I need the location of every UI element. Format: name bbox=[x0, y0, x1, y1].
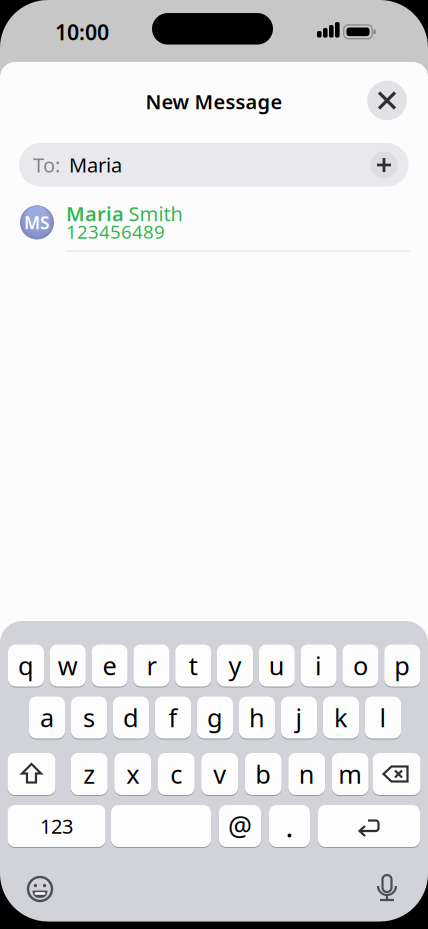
button[interactable]: a bbox=[29, 696, 65, 738]
button[interactable]: Emoji bbox=[23, 872, 57, 906]
staticText: . bbox=[285, 806, 293, 845]
button[interactable]: t bbox=[175, 644, 211, 686]
staticText: Smith bbox=[128, 200, 182, 227]
button[interactable]: To: Maria bbox=[19, 143, 409, 187]
button[interactable]: 123 bbox=[7, 805, 105, 847]
staticText: @ bbox=[228, 808, 252, 844]
staticText: v bbox=[213, 757, 226, 791]
staticText: a bbox=[40, 701, 54, 734]
button[interactable]: Close bbox=[367, 81, 407, 120]
staticText: s bbox=[83, 701, 95, 734]
staticText: To: bbox=[33, 151, 60, 178]
staticText: y bbox=[228, 649, 241, 682]
button[interactable]: f bbox=[155, 696, 191, 738]
button[interactable]: Dictation bbox=[370, 871, 404, 905]
staticText: 123 bbox=[40, 813, 73, 839]
button[interactable]: w bbox=[50, 644, 86, 686]
button[interactable]: Return bbox=[318, 805, 420, 847]
staticText: p bbox=[394, 649, 410, 682]
button[interactable]: . bbox=[269, 805, 310, 847]
staticText: b bbox=[255, 757, 271, 791]
button[interactable]: space bbox=[111, 805, 211, 847]
staticText: k bbox=[334, 701, 348, 734]
staticText: o bbox=[353, 649, 368, 682]
staticText: w bbox=[58, 649, 78, 682]
button[interactable]: c bbox=[158, 753, 195, 795]
staticText: 10:00 bbox=[55, 18, 109, 46]
button[interactable]: MS bbox=[0, 190, 428, 252]
staticText: Maria bbox=[69, 151, 122, 178]
button[interactable]: p bbox=[384, 644, 420, 686]
button[interactable]: r bbox=[133, 644, 169, 686]
button[interactable]: d bbox=[113, 696, 149, 738]
staticText: g bbox=[207, 701, 223, 734]
staticText: u bbox=[269, 649, 285, 682]
staticText: f bbox=[168, 701, 177, 734]
button[interactable]: m bbox=[332, 753, 369, 795]
button[interactable]: i bbox=[301, 644, 337, 686]
button[interactable]: l bbox=[365, 696, 401, 738]
staticText: h bbox=[249, 701, 265, 734]
staticText: MS bbox=[24, 211, 50, 234]
staticText: Maria bbox=[66, 200, 124, 227]
button[interactable]: n bbox=[288, 753, 325, 795]
staticText: i bbox=[315, 649, 322, 682]
button[interactable]: s bbox=[71, 696, 107, 738]
button[interactable]: k bbox=[323, 696, 359, 738]
button[interactable]: o bbox=[342, 644, 378, 686]
button[interactable]: b bbox=[245, 753, 282, 795]
staticText: j bbox=[295, 701, 302, 734]
button[interactable]: q bbox=[8, 644, 44, 686]
staticText: New Message bbox=[145, 88, 282, 115]
button[interactable]: y bbox=[217, 644, 253, 686]
button[interactable]: h bbox=[239, 696, 275, 738]
button[interactable]: @ bbox=[219, 805, 261, 847]
button[interactable]: z bbox=[71, 753, 108, 795]
staticText: d bbox=[123, 701, 139, 734]
button[interactable]: Delete bbox=[372, 753, 420, 795]
staticText: 123456489 bbox=[66, 219, 165, 244]
staticText: t bbox=[189, 649, 198, 682]
button[interactable]: u bbox=[259, 644, 295, 686]
button[interactable]: Add contact bbox=[370, 151, 398, 179]
button[interactable]: Shift bbox=[7, 753, 55, 795]
staticText: z bbox=[83, 757, 95, 791]
staticText: n bbox=[299, 757, 315, 791]
staticText: x bbox=[126, 757, 139, 791]
button[interactable]: e bbox=[92, 644, 128, 686]
staticText: q bbox=[18, 649, 34, 682]
staticText: r bbox=[146, 649, 156, 682]
staticText: c bbox=[170, 757, 182, 791]
button[interactable]: j bbox=[281, 696, 317, 738]
staticText: e bbox=[103, 649, 117, 682]
button[interactable]: x bbox=[114, 753, 151, 795]
button[interactable]: g bbox=[197, 696, 233, 738]
button[interactable]: v bbox=[201, 753, 238, 795]
staticText: m bbox=[338, 757, 362, 791]
staticText: l bbox=[379, 701, 386, 734]
